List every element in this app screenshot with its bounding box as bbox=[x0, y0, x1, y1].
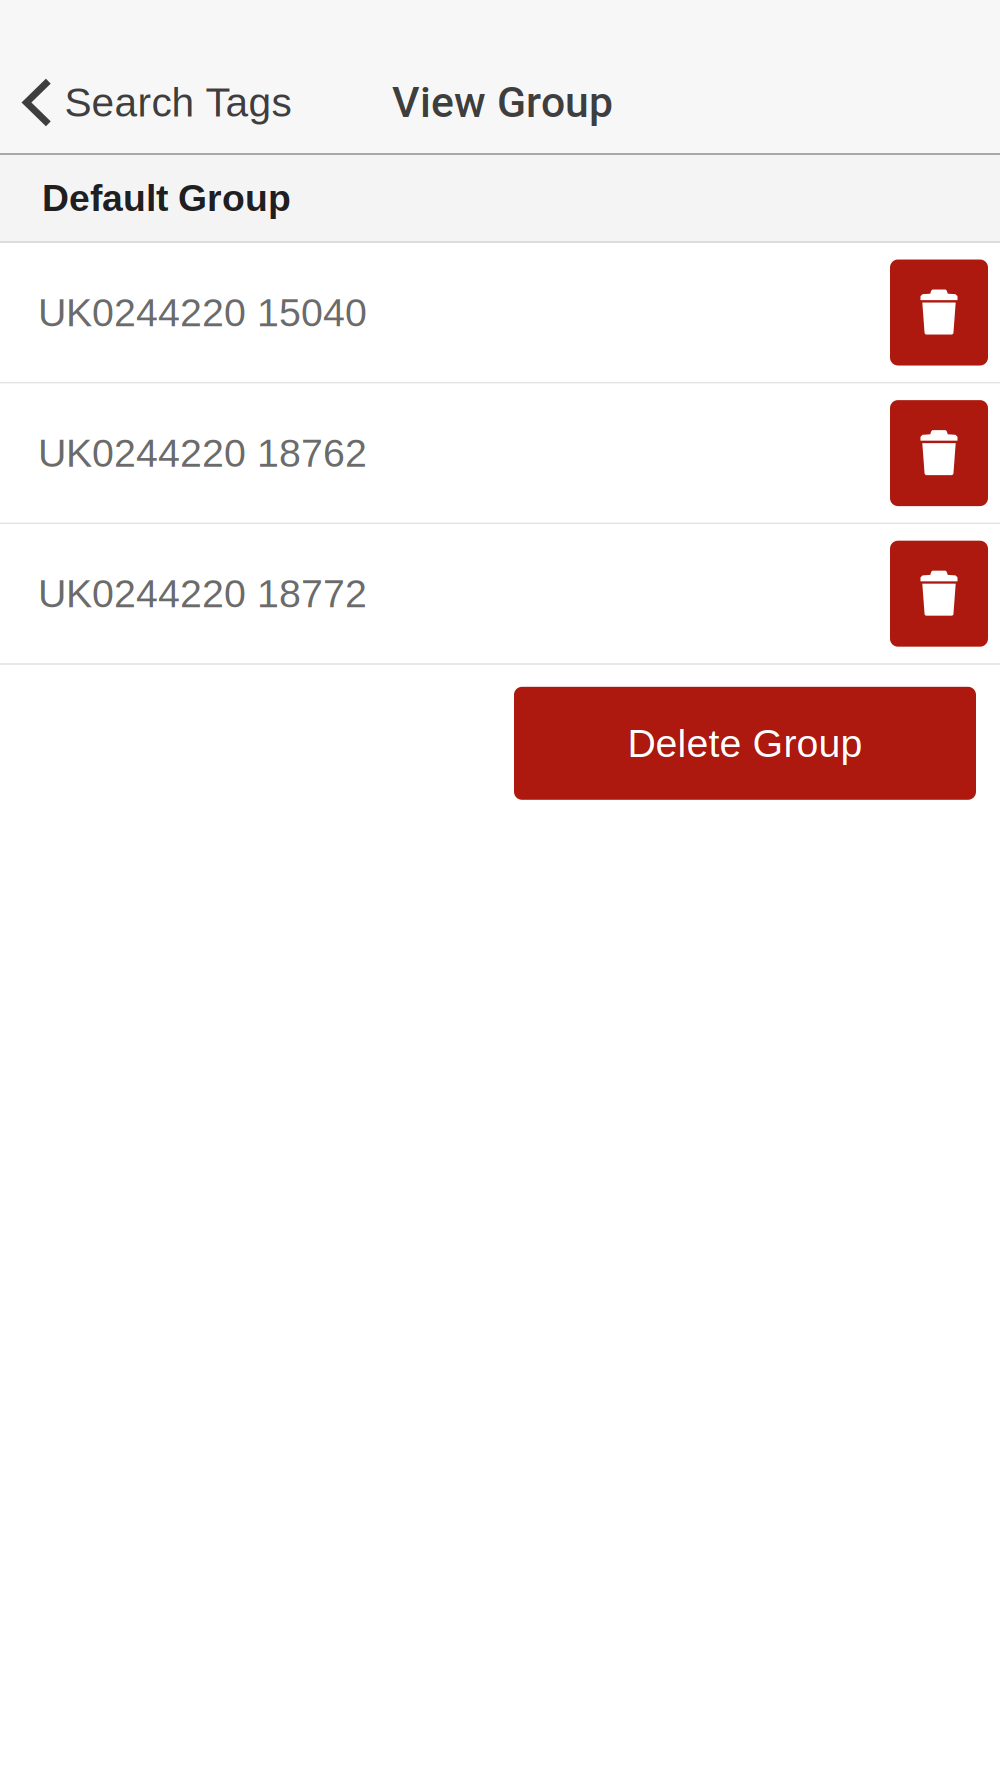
staticText: UK0244220 15040 bbox=[38, 290, 367, 334]
button[interactable]: Delete UK0244220 18762 bbox=[890, 400, 988, 506]
staticText: UK0244220 18762 bbox=[38, 431, 367, 475]
staticText: Search Tags bbox=[64, 80, 291, 125]
staticText: UK0244220 18772 bbox=[38, 572, 367, 616]
staticText: Default Group bbox=[42, 177, 291, 219]
button[interactable]: Delete UK0244220 15040 bbox=[890, 259, 988, 365]
staticText: View Group bbox=[392, 77, 613, 127]
button[interactable]: Search Tags bbox=[0, 52, 307, 153]
staticText: Delete Group bbox=[627, 721, 862, 765]
button[interactable]: Delete Group bbox=[514, 687, 976, 800]
button[interactable]: Delete UK0244220 18772 bbox=[890, 541, 988, 647]
